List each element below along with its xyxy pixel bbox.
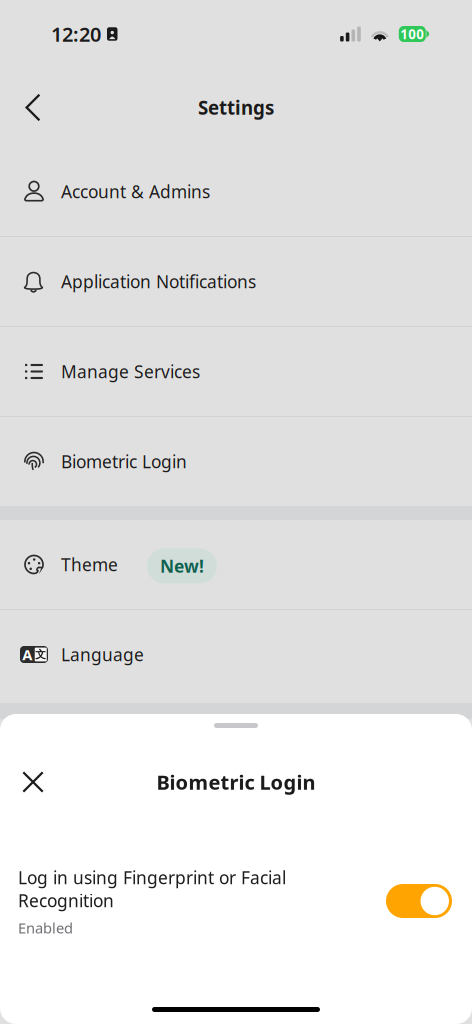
button[interactable]: Manage Services xyxy=(0,327,472,416)
button[interactable]: Biometric Login xyxy=(0,417,472,506)
button[interactable]: Back xyxy=(0,85,55,129)
staticText: Settings xyxy=(198,95,274,120)
staticText: A xyxy=(22,645,32,664)
staticText: Application Notifications xyxy=(61,270,256,293)
staticText: 100 xyxy=(400,25,424,43)
staticText: New! xyxy=(160,554,204,577)
staticText: Biometric Login xyxy=(156,769,315,795)
staticText: Language xyxy=(61,643,144,666)
staticText: 文 xyxy=(35,648,46,661)
staticText: Account & Admins xyxy=(61,180,210,203)
staticText: Log in using Fingerprint or Facial Recog… xyxy=(18,866,286,912)
button[interactable]: Application Notifications xyxy=(0,237,472,326)
button[interactable]: A xyxy=(0,610,472,699)
staticText: 12:20 xyxy=(51,21,101,47)
staticText: Biometric Login xyxy=(61,450,187,473)
staticText: Enabled xyxy=(18,918,73,937)
button[interactable]: Account & Admins xyxy=(0,147,472,236)
button[interactable]: Biometric login toggle xyxy=(386,884,452,918)
button[interactable]: Theme xyxy=(0,520,472,609)
button[interactable]: Close xyxy=(0,760,55,804)
staticText: Theme xyxy=(61,553,118,576)
staticText: Manage Services xyxy=(61,360,200,383)
